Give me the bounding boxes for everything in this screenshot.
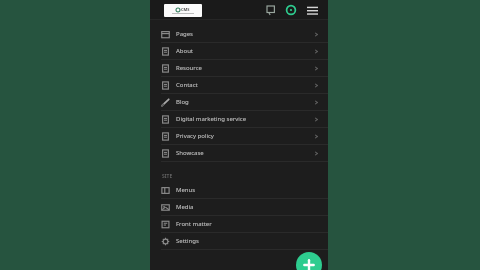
button[interactable]: Comments (263, 2, 279, 18)
button[interactable]: Digital marketing service (150, 111, 328, 127)
button[interactable]: Showcase (150, 145, 328, 161)
button[interactable]: Create new (296, 252, 322, 270)
button[interactable]: About (150, 43, 328, 59)
button[interactable]: Menu (304, 2, 320, 18)
staticText: SITE (162, 173, 173, 180)
button[interactable]: Front matter (150, 216, 328, 232)
button[interactable]: Privacy policy (150, 128, 328, 144)
staticText: Showcase (176, 149, 314, 157)
button[interactable]: Media (150, 199, 328, 215)
button[interactable]: Pages (150, 26, 328, 42)
staticText: Digital marketing service (176, 115, 314, 123)
staticText: CMS (181, 7, 190, 12)
staticText: Front matter (176, 220, 319, 228)
button[interactable]: Publish status (283, 2, 299, 18)
staticText: Pages (176, 30, 314, 38)
staticText: Settings (176, 237, 319, 245)
staticText: About (176, 47, 314, 55)
staticText: Blog (176, 98, 314, 106)
button[interactable]: Resource (150, 60, 328, 76)
staticText: Contact (176, 81, 314, 89)
staticText: Media (176, 203, 319, 211)
button[interactable]: Settings (150, 233, 328, 249)
staticText: Menus (176, 186, 319, 194)
button[interactable]: CMS (164, 4, 202, 17)
button[interactable]: Blog (150, 94, 328, 110)
button[interactable]: Contact (150, 77, 328, 93)
button[interactable]: Menus (150, 182, 328, 198)
staticText: Privacy policy (176, 132, 314, 140)
staticText: Resource (176, 64, 314, 72)
